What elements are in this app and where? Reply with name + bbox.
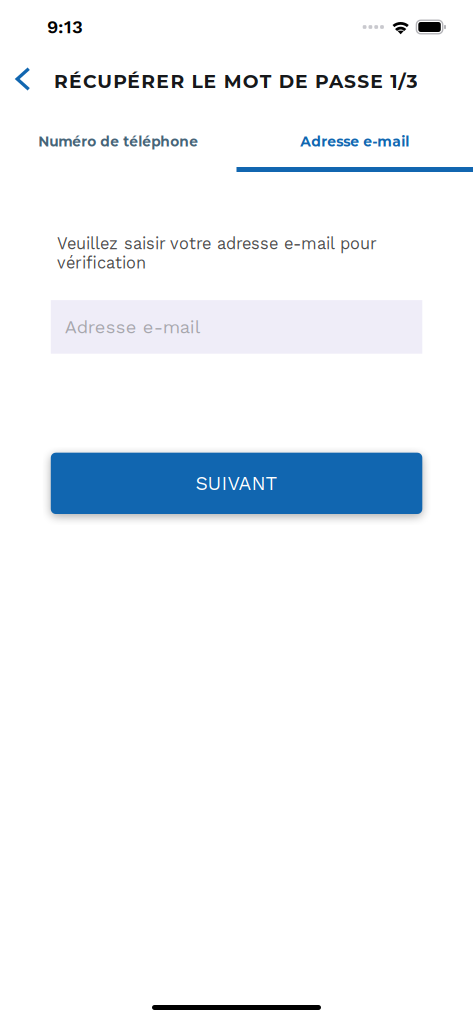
staticText: 9:13 [47, 16, 83, 38]
staticText: Adresse e-mail [300, 133, 409, 150]
staticText: RÉCUPÉRER LE MOT DE PASSE 1/3 [54, 70, 417, 93]
button[interactable]: Adresse e-mail [236, 111, 473, 172]
staticText: SUIVANT [196, 472, 278, 495]
button[interactable]: SUIVANT [51, 453, 422, 514]
button[interactable]: Retour [4, 60, 42, 98]
staticText: Adresse e-mail [65, 316, 201, 338]
button[interactable]: Numéro de téléphone [0, 111, 236, 172]
staticText: Veuillez saisir votre adresse e-mail pou… [57, 234, 377, 272]
staticText: Numéro de téléphone [38, 133, 198, 150]
